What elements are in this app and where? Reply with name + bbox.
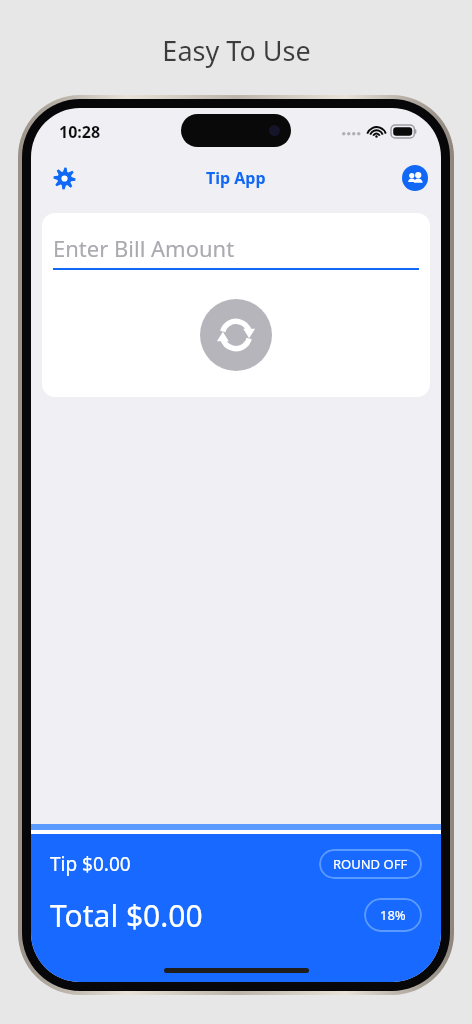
button[interactable]: Settings	[44, 158, 84, 198]
staticText: 10:28	[59, 121, 101, 143]
button[interactable]: 18%	[364, 898, 422, 932]
staticText: Enter Bill Amount	[53, 233, 235, 263]
staticText: Tip App	[206, 167, 266, 189]
button[interactable]: Reset	[200, 299, 272, 371]
staticText: Tip $0.00	[50, 851, 131, 877]
staticText: 18%	[380, 906, 406, 924]
button[interactable]: Enter Bill Amount	[53, 233, 419, 270]
staticText: ROUND OFF	[333, 855, 408, 873]
staticText: Total $0.00	[50, 895, 203, 936]
staticText: Easy To Use	[162, 32, 311, 69]
button[interactable]: Account	[402, 165, 428, 191]
button[interactable]: ROUND OFF	[319, 849, 422, 879]
